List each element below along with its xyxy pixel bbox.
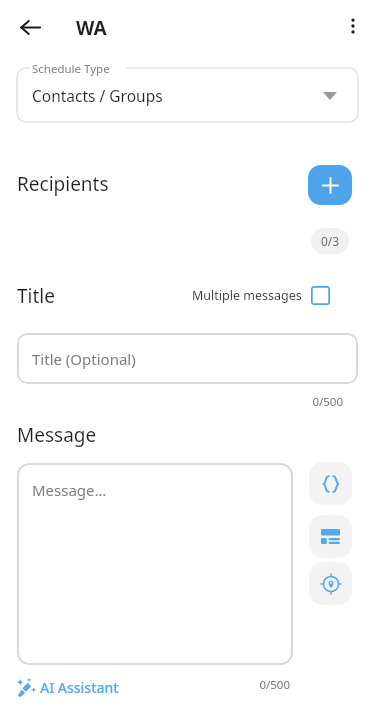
button[interactable]: Message… — [17, 463, 293, 665]
button[interactable]: AI Assistant — [17, 674, 119, 700]
button[interactable]: Back — [12, 9, 48, 45]
staticText: Schedule Type — [32, 61, 110, 77]
staticText: AI Assistant — [40, 678, 119, 697]
button[interactable]: Add recipient — [308, 165, 352, 205]
staticText: Title — [17, 283, 55, 309]
staticText: Message — [17, 422, 97, 448]
staticText: Title (Optional) — [32, 349, 136, 369]
staticText: Contacts / Groups — [32, 85, 163, 106]
staticText: Recipients — [17, 171, 109, 197]
button[interactable]: Multiple messages — [192, 282, 330, 308]
staticText: 0/3 — [321, 233, 340, 249]
button[interactable]: Insert placeholder — [309, 462, 352, 505]
button[interactable]: Contacts / Groups — [17, 68, 358, 122]
button[interactable]: Insert template — [309, 515, 352, 558]
staticText: Multiple messages — [192, 287, 302, 304]
staticText: 0/500 — [288, 394, 343, 410]
staticText: 0/500 — [235, 677, 290, 693]
button[interactable]: More options — [336, 9, 370, 43]
staticText: Message… — [32, 480, 107, 500]
button[interactable]: Title (Optional) — [17, 333, 358, 384]
button[interactable]: Insert location — [309, 562, 352, 605]
staticText: WA — [76, 15, 107, 41]
